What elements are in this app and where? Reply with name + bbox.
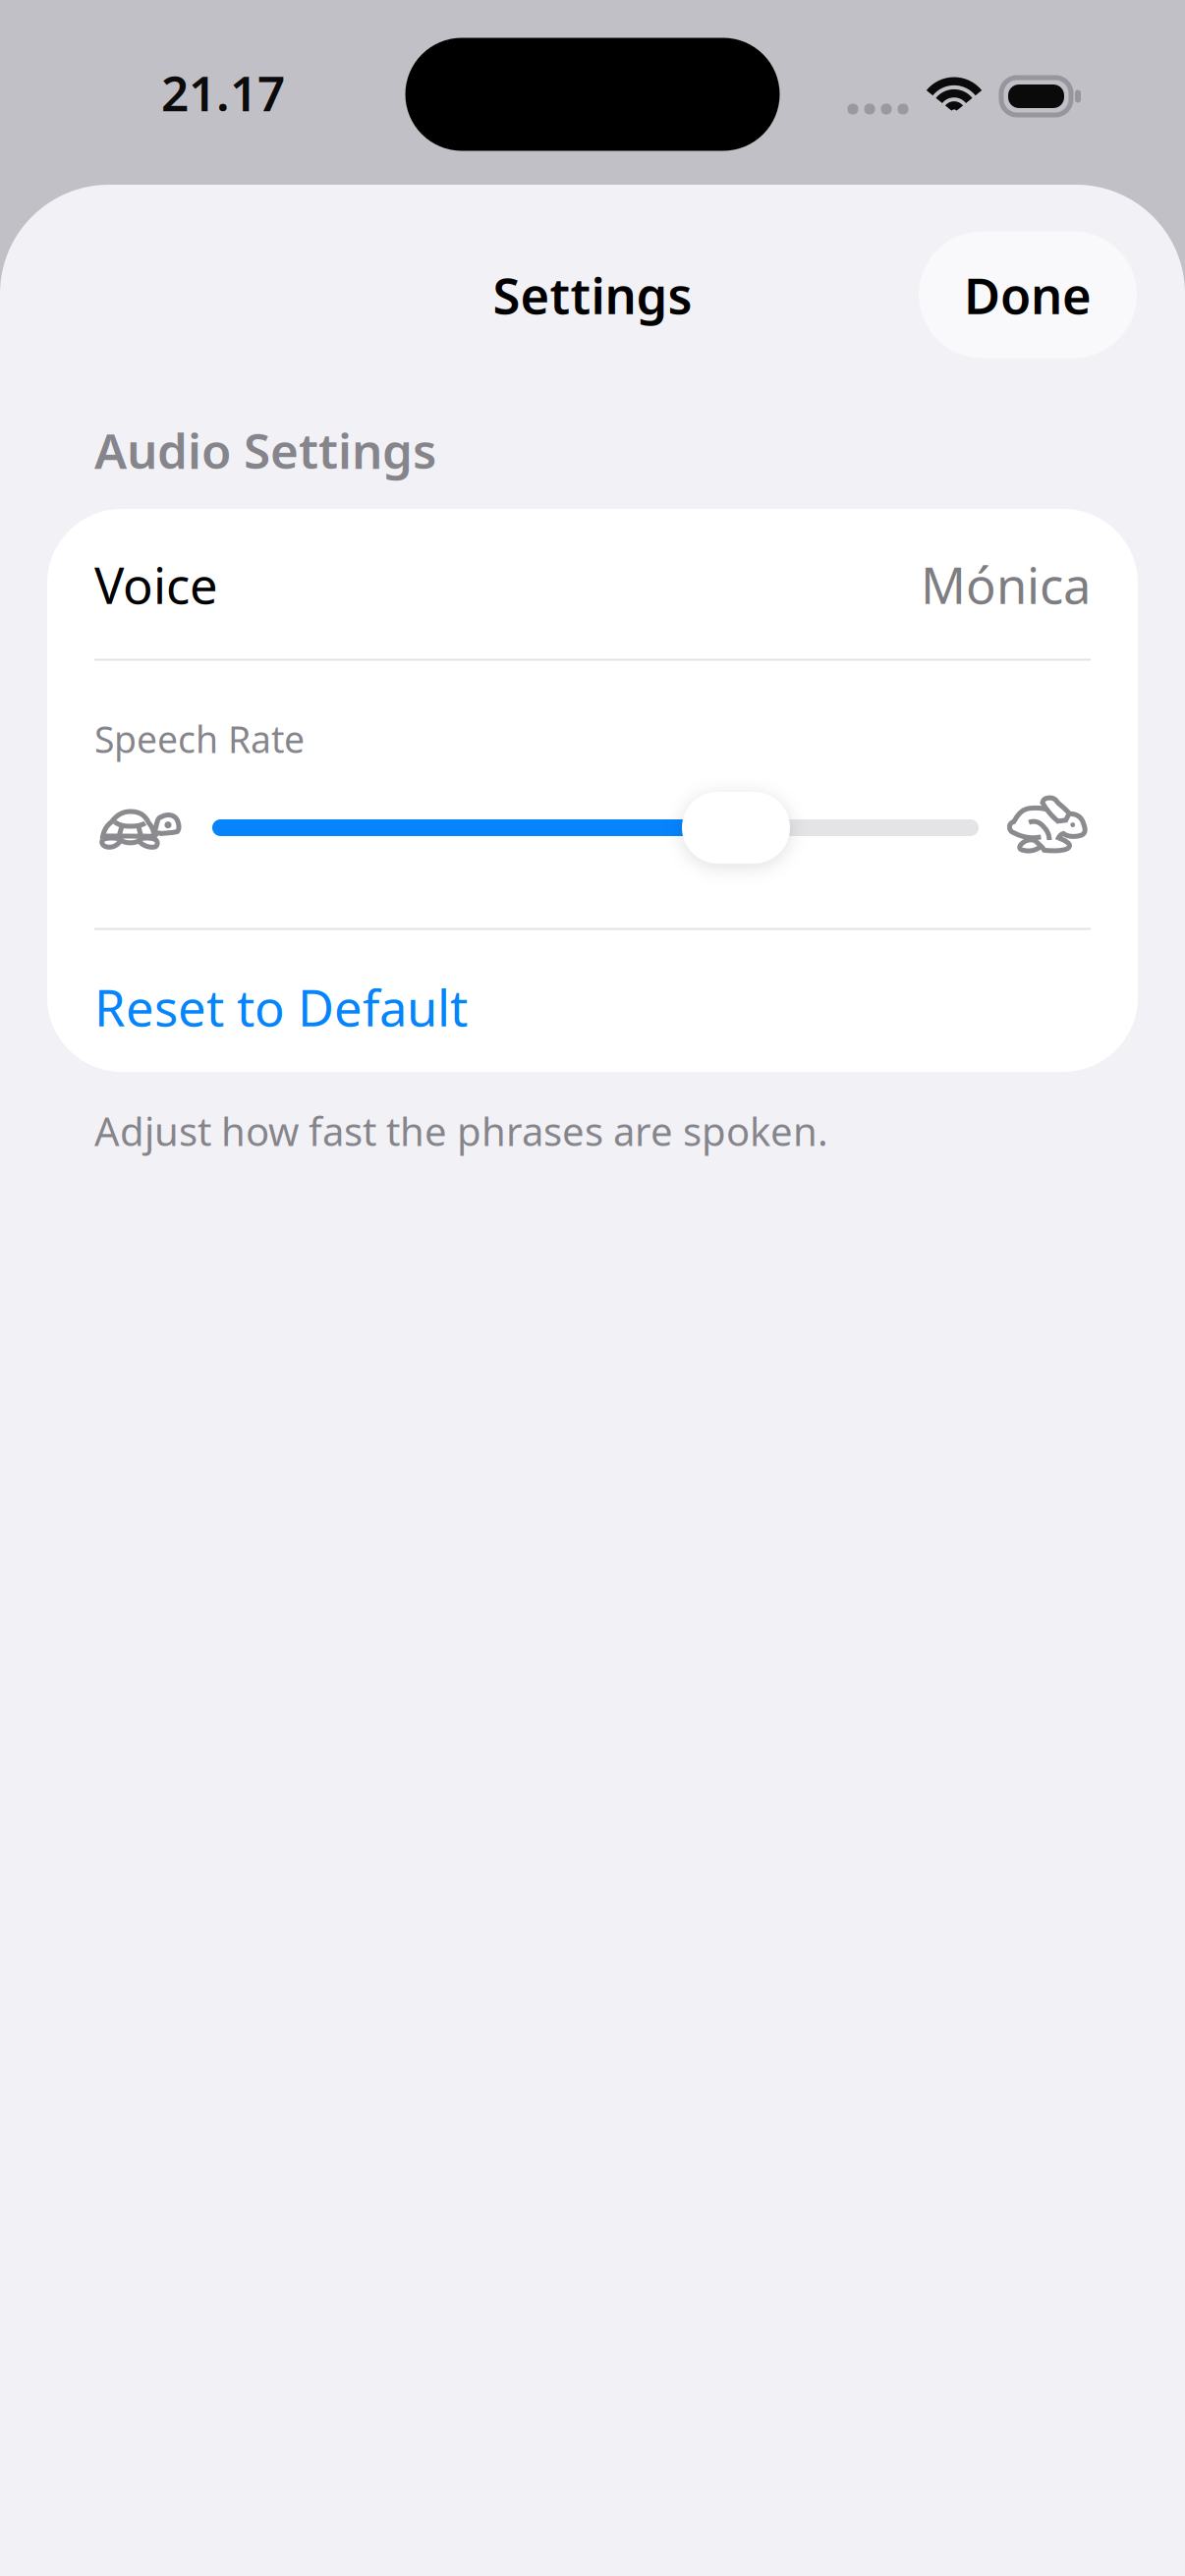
staticText: Voice bbox=[94, 552, 218, 618]
button[interactable]: Reset to Default bbox=[47, 930, 1138, 1070]
staticText: Reset to Default bbox=[94, 974, 468, 1040]
staticText: Speech Rate bbox=[94, 714, 305, 763]
staticText: Audio Settings bbox=[94, 418, 436, 482]
staticText: Mónica bbox=[921, 552, 1091, 618]
button[interactable]: Voice bbox=[47, 510, 1138, 659]
button[interactable]: Done bbox=[919, 231, 1137, 358]
staticText: Adjust how fast the phrases are spoken. bbox=[94, 1105, 828, 1157]
staticText: Settings bbox=[493, 262, 692, 328]
staticText: Done bbox=[964, 262, 1092, 328]
staticText: 21.17 bbox=[161, 60, 285, 124]
